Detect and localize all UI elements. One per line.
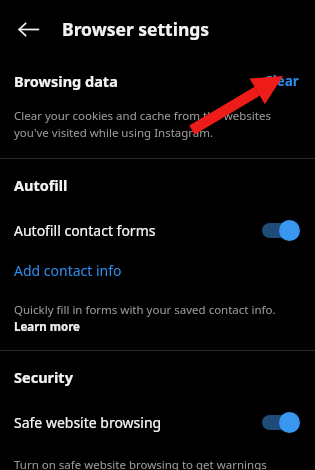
- button[interactable]: Safe website browsing: [259, 407, 305, 437]
- staticText: Quickly fill in forms with your saved co…: [14, 302, 305, 334]
- staticText: Turn on safe website browsing to get war…: [14, 457, 291, 470]
- staticText: Autofill contact forms: [14, 221, 259, 240]
- staticText: Browser settings: [62, 17, 210, 41]
- staticText: Safe website browsing: [14, 413, 259, 432]
- staticText: Security: [14, 367, 73, 387]
- staticText: Add contact info: [14, 261, 122, 280]
- staticText: Browsing data: [14, 71, 258, 91]
- button[interactable]: Autofill contact forms: [0, 215, 315, 245]
- button[interactable]: Safe website browsing: [0, 407, 315, 437]
- button[interactable]: Back: [6, 7, 50, 51]
- button[interactable]: Clear: [258, 68, 305, 94]
- staticText: Clear your cookies and cache from the we…: [14, 108, 303, 140]
- staticText: Clear: [264, 72, 299, 90]
- button[interactable]: Add contact info: [0, 259, 136, 282]
- staticText: Autofill: [14, 175, 68, 195]
- button[interactable]: Autofill contact forms: [259, 215, 305, 245]
